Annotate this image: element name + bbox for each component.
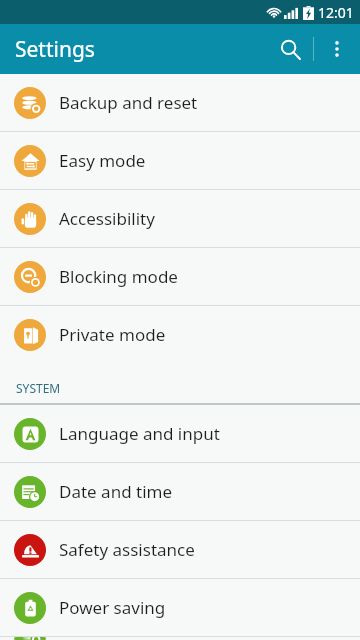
staticText: Date and time bbox=[59, 480, 173, 503]
button[interactable]: Safety assistance bbox=[0, 521, 360, 578]
staticText: Blocking mode bbox=[59, 265, 178, 288]
staticText: Backup and reset bbox=[59, 91, 198, 114]
staticText: Power saving bbox=[59, 596, 166, 619]
button[interactable]: Easy mode bbox=[0, 132, 360, 189]
staticText: Language and input bbox=[59, 422, 220, 445]
staticText: Private mode bbox=[59, 323, 166, 346]
button[interactable]: Backup and reset bbox=[0, 74, 360, 131]
staticText: SYSTEM bbox=[16, 380, 61, 396]
button[interactable]: Power saving bbox=[0, 579, 360, 636]
staticText: Accessibility bbox=[59, 207, 155, 230]
button[interactable]: Date and time bbox=[0, 463, 360, 520]
staticText: Easy mode bbox=[59, 149, 146, 172]
staticText: 12:01 bbox=[318, 3, 354, 22]
button[interactable]: More options bbox=[314, 26, 360, 72]
button[interactable]: Language and input bbox=[0, 405, 360, 462]
button[interactable]: Search bbox=[267, 26, 313, 72]
staticText: Settings bbox=[15, 35, 95, 64]
button[interactable]: Blocking mode bbox=[0, 248, 360, 305]
staticText: Safety assistance bbox=[59, 538, 195, 561]
button[interactable]: Storage bbox=[0, 637, 360, 640]
button[interactable]: Private mode bbox=[0, 306, 360, 363]
button[interactable]: Accessibility bbox=[0, 190, 360, 247]
